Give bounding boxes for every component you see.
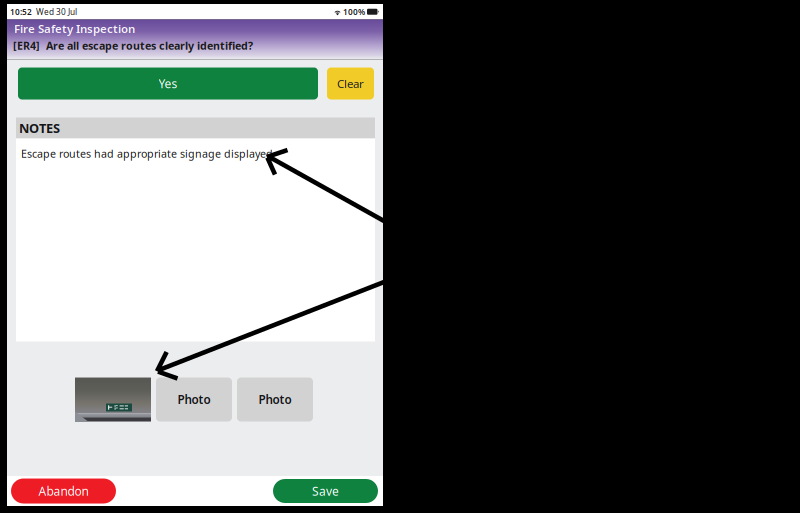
staticText: 10:52	[10, 6, 32, 17]
staticText: Clear	[337, 76, 364, 91]
staticText: Wed 30 Jul	[32, 6, 77, 17]
staticText: Save	[312, 483, 339, 499]
staticText: Yes	[158, 75, 177, 91]
button[interactable]: Photo 1	[75, 377, 151, 421]
staticText: Photo	[258, 392, 291, 407]
button[interactable]: Abandon	[11, 478, 116, 503]
staticText: Fire Safety Inspection	[14, 21, 135, 36]
staticText: Abandon	[38, 483, 88, 499]
staticText: Escape routes had appropriate signage di…	[21, 146, 273, 161]
button[interactable]: Photo	[156, 377, 232, 421]
button[interactable]: Photo	[237, 377, 313, 421]
staticText: [ER4] Are all escape routes clearly iden…	[13, 38, 253, 53]
staticText: Photo	[177, 392, 210, 407]
button[interactable]: Yes	[18, 67, 318, 99]
staticText: NOTES	[19, 119, 60, 136]
button[interactable]: Clear	[327, 67, 374, 99]
button[interactable]: Save	[273, 479, 378, 503]
staticText: 100%	[341, 6, 367, 17]
